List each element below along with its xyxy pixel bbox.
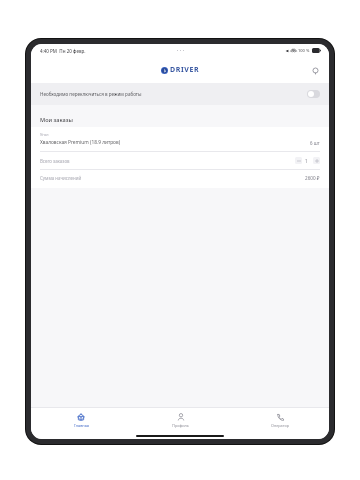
button[interactable]: Оператор bbox=[230, 408, 329, 432]
staticText: Необходимо переключиться в режим работы bbox=[40, 91, 307, 97]
staticText: Профиль bbox=[172, 423, 189, 428]
staticText: Оператор bbox=[271, 423, 289, 428]
staticText: Всего заказов bbox=[40, 158, 295, 164]
button[interactable]: Decrease bbox=[295, 157, 302, 164]
staticText: Мои заказы bbox=[40, 116, 73, 124]
staticText: 4:40 PM Пн 20 февр. bbox=[40, 48, 86, 54]
button[interactable]: Угол bbox=[31, 127, 329, 188]
staticText: Хваловская Premium (18.9 литров) bbox=[40, 139, 310, 146]
button[interactable]: Notifications bbox=[308, 63, 322, 77]
button[interactable]: Work mode switch bbox=[307, 90, 320, 98]
staticText: 1 bbox=[305, 158, 310, 164]
staticText: 2600 ₽ bbox=[305, 175, 320, 181]
staticText: 100 % bbox=[298, 48, 310, 53]
button[interactable]: Главная bbox=[31, 408, 131, 432]
button[interactable]: Необходимо переключиться в режим работы bbox=[31, 83, 329, 105]
staticText: 6 шт bbox=[310, 140, 320, 146]
staticText: DRIVER bbox=[170, 65, 200, 75]
staticText: Угол bbox=[40, 132, 49, 137]
button[interactable]: Профиль bbox=[131, 408, 230, 432]
button[interactable]: Increase bbox=[313, 157, 320, 164]
staticText: Главная bbox=[74, 423, 89, 428]
staticText: Сумма начислений bbox=[40, 175, 305, 181]
